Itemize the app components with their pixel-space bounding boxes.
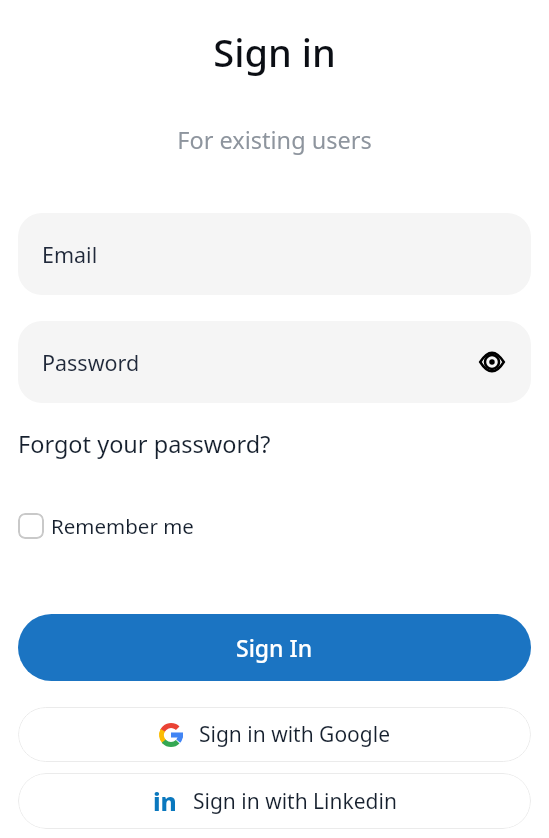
- button[interactable]: [479, 349, 505, 375]
- staticText: For existing users: [18, 124, 531, 156]
- staticText: Email: [42, 240, 98, 269]
- button[interactable]: Email: [18, 213, 531, 295]
- button[interactable]: Forgot your password?: [18, 428, 271, 460]
- staticText: in: [153, 785, 177, 818]
- staticText: Sign in with Linkedin: [193, 787, 397, 816]
- button[interactable]: Password: [18, 321, 531, 403]
- staticText: Remember me: [51, 512, 194, 540]
- button[interactable]: Sign In: [18, 614, 531, 681]
- staticText: Sign in: [18, 26, 531, 78]
- staticText: Sign In: [236, 632, 313, 663]
- staticText: Password: [42, 348, 140, 377]
- staticText: Sign in with Google: [199, 720, 390, 749]
- button[interactable]: in: [18, 773, 531, 829]
- button[interactable]: Sign in with Google: [18, 707, 531, 762]
- button[interactable]: Remember me: [18, 512, 194, 540]
